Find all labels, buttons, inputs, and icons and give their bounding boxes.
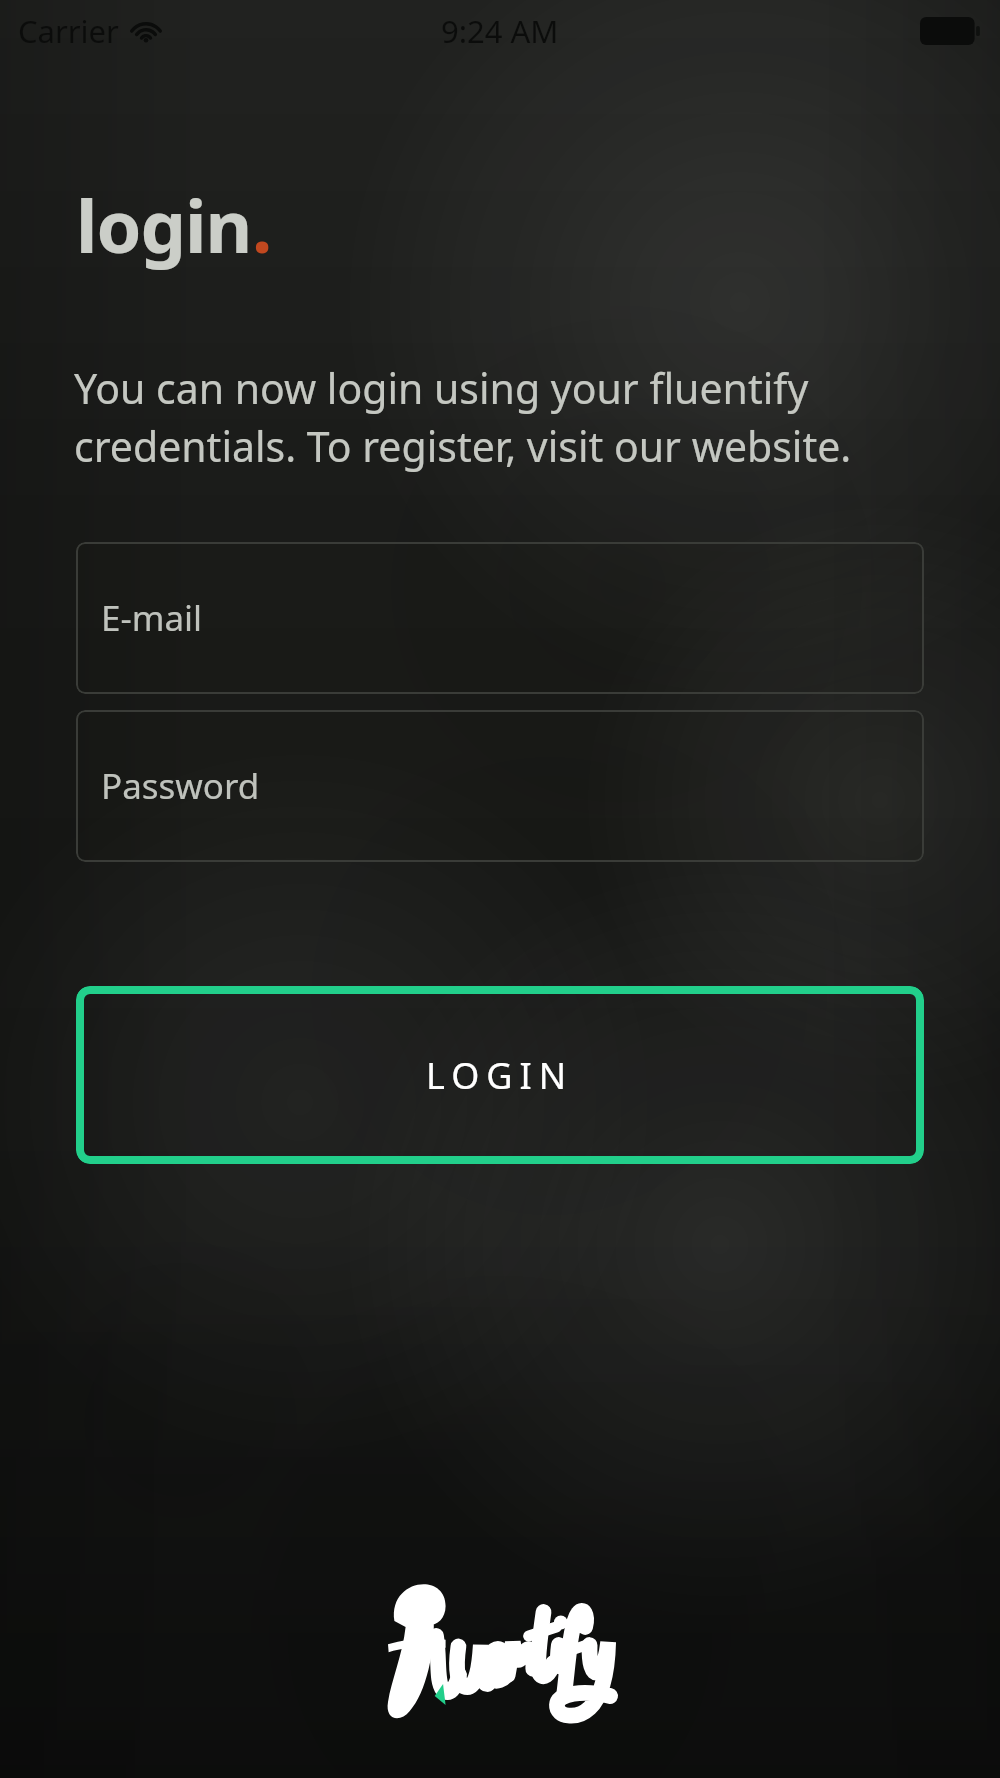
staticText: Carrier (18, 10, 119, 52)
staticText: 9:24 AM (441, 10, 559, 52)
staticText: E-mail (101, 594, 203, 642)
other: fluentify (340, 1576, 660, 1726)
staticText: login (76, 176, 252, 274)
button[interactable]: LOGIN (76, 986, 924, 1164)
button[interactable]: Password (76, 710, 924, 862)
staticText: . (252, 176, 273, 274)
staticText: You can now login using your fluentify c… (74, 360, 872, 474)
button[interactable]: E-mail (76, 542, 924, 694)
staticText: LOGIN (426, 1051, 574, 1100)
staticText: Password (101, 762, 260, 810)
